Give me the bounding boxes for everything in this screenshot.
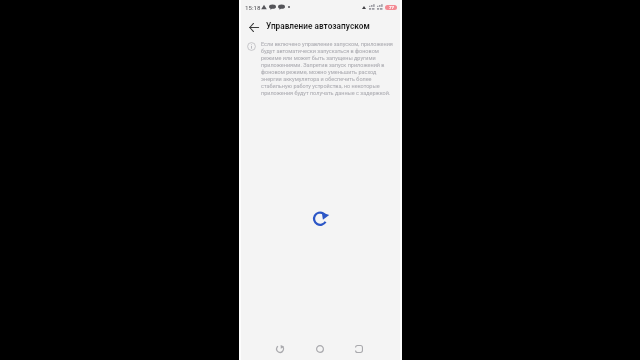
button[interactable]: Back [246,19,262,35]
button[interactable]: Home [311,340,329,358]
staticText: 77 [389,5,394,10]
staticText: 15:18 [245,4,261,11]
staticText: Если включено управление запуском, прило… [261,41,394,97]
button[interactable]: Back [271,340,289,358]
button[interactable]: Recents [350,340,368,358]
button[interactable]: Refresh [311,208,331,228]
staticText: Управление автозапуском [266,21,370,31]
